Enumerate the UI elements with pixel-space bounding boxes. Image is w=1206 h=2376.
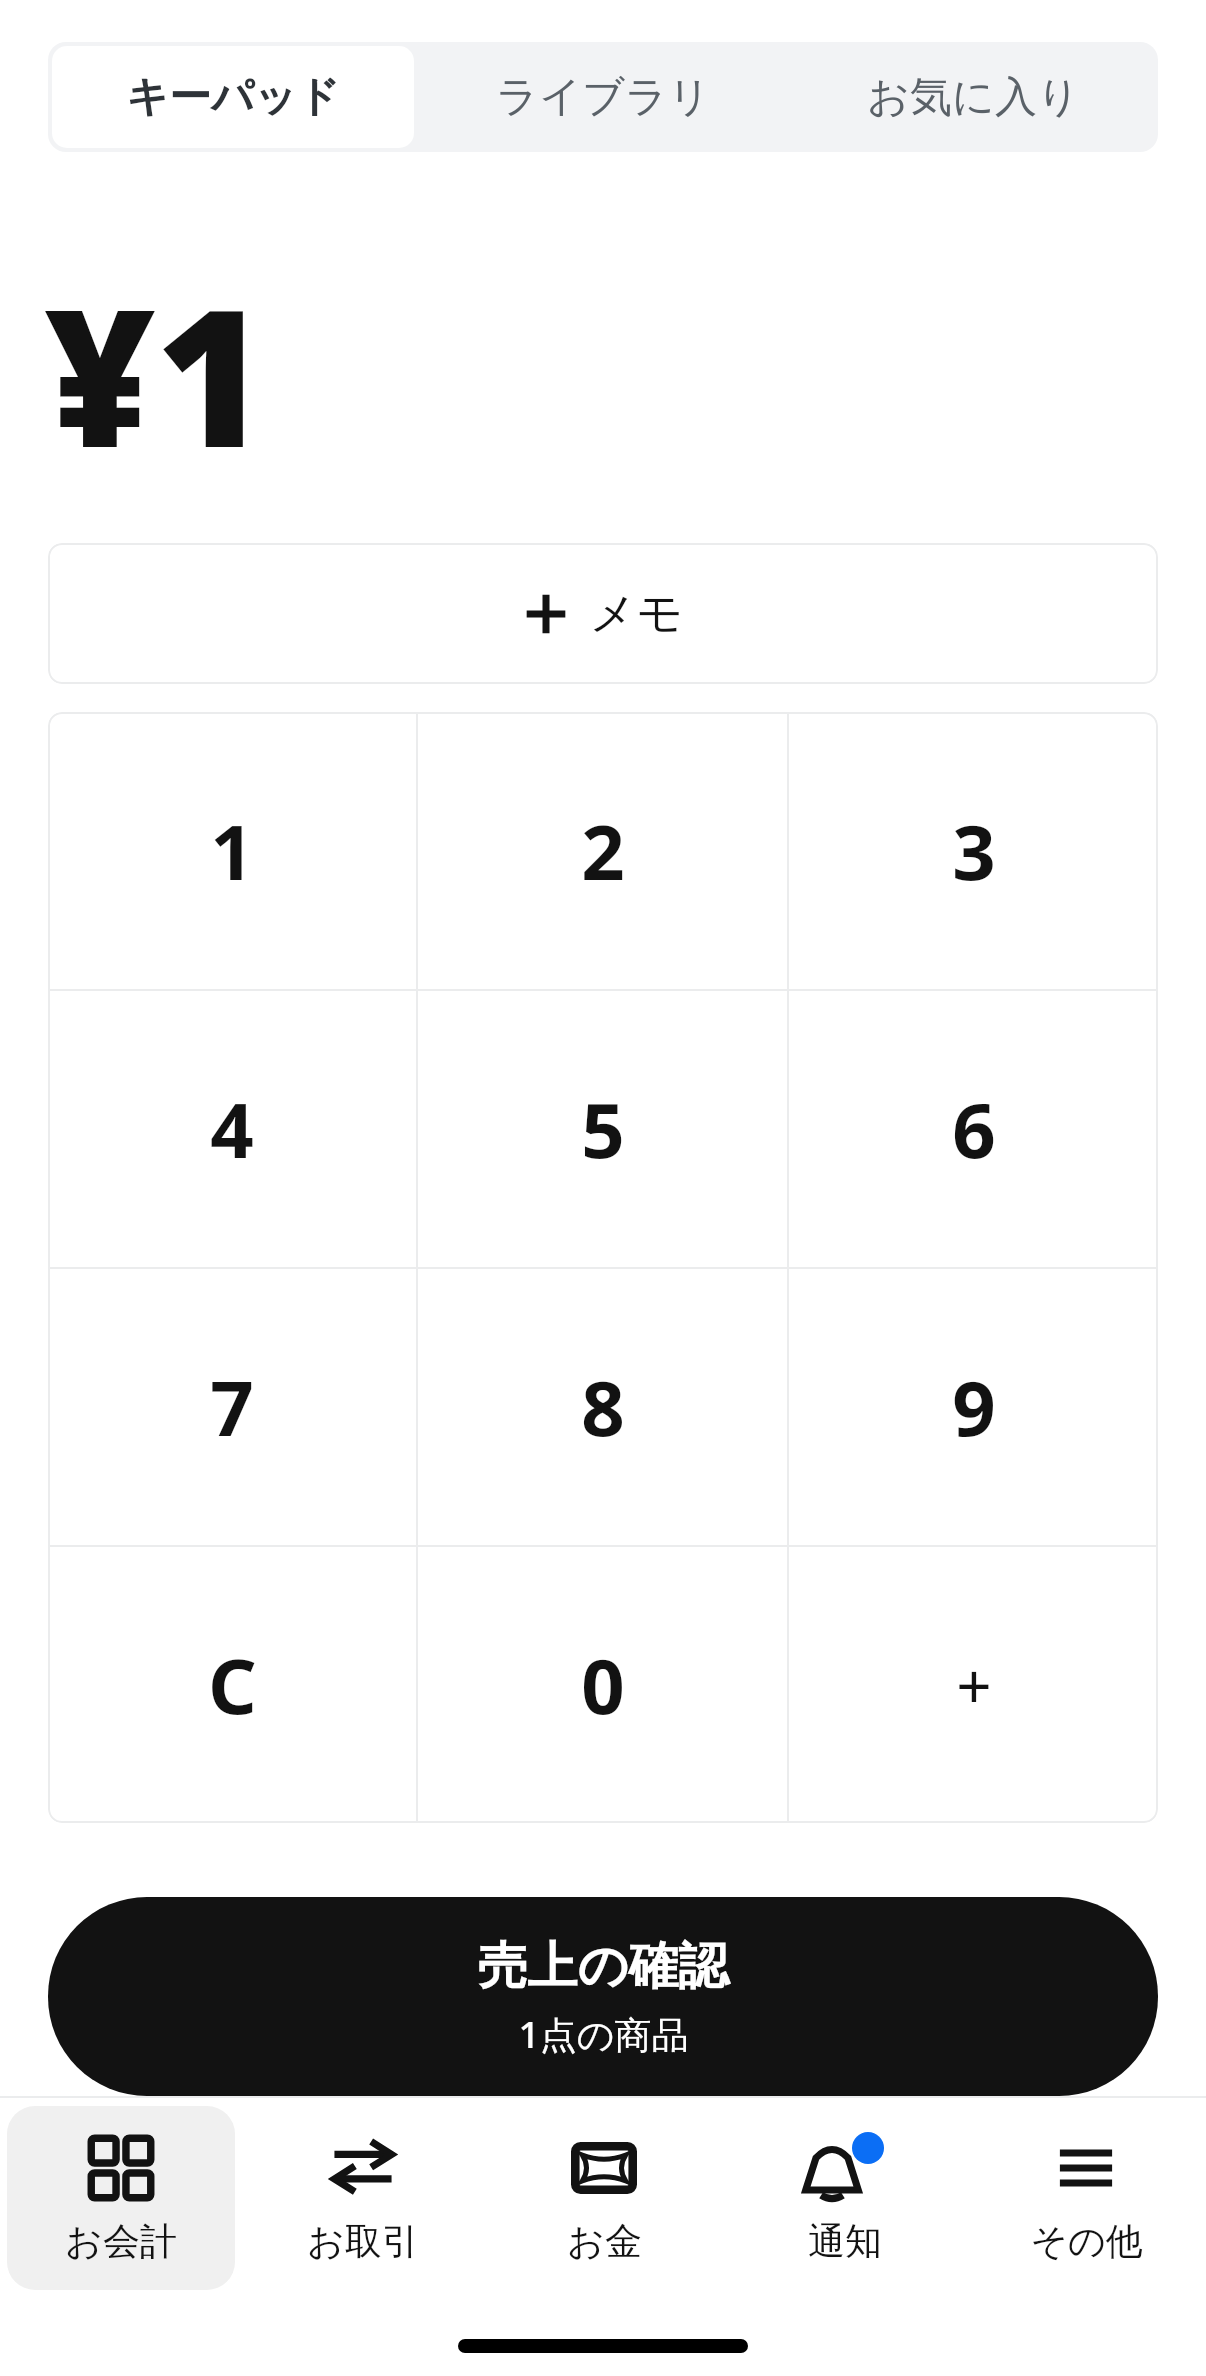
button[interactable]: + bbox=[789, 1547, 1158, 1823]
button[interactable]: ライブラリ bbox=[422, 46, 784, 148]
button[interactable]: 2 bbox=[418, 712, 787, 989]
staticText: メモ bbox=[589, 585, 684, 643]
staticText: 通知 bbox=[808, 2218, 882, 2265]
button[interactable]: お金 bbox=[490, 2106, 718, 2290]
staticText: C bbox=[208, 1633, 257, 1737]
button[interactable]: 6 bbox=[789, 991, 1158, 1267]
button[interactable]: C bbox=[48, 1547, 416, 1823]
button[interactable]: 3 bbox=[789, 712, 1158, 989]
staticText: お金 bbox=[567, 2218, 642, 2265]
staticText: 5 bbox=[581, 1077, 625, 1181]
other: お会計 bbox=[90, 2137, 152, 2199]
button[interactable]: 通知 bbox=[731, 2106, 959, 2290]
button[interactable]: 1 bbox=[48, 712, 416, 989]
button[interactable]: お会計 bbox=[7, 2106, 235, 2290]
staticText: + bbox=[956, 1643, 992, 1727]
staticText: 1点の商品 bbox=[518, 2008, 689, 2059]
staticText: その他 bbox=[1030, 2218, 1143, 2265]
staticText: 8 bbox=[581, 1355, 625, 1459]
other: 通知 bbox=[800, 2132, 890, 2204]
button[interactable]: 7 bbox=[48, 1269, 416, 1545]
staticText: お会計 bbox=[65, 2218, 177, 2265]
button[interactable]: キーパッド bbox=[52, 46, 414, 148]
staticText: 1 bbox=[210, 799, 254, 903]
staticText: キーパッド bbox=[126, 71, 340, 124]
other: お金 bbox=[571, 2135, 637, 2201]
button[interactable]: お気に入り bbox=[792, 46, 1154, 148]
other: お取引 bbox=[329, 2134, 397, 2202]
staticText: 3 bbox=[952, 799, 996, 903]
button[interactable]: その他 bbox=[972, 2106, 1200, 2290]
button[interactable]: 4 bbox=[48, 991, 416, 1267]
staticText: 売上の確認 bbox=[477, 1935, 729, 1998]
staticText: 2 bbox=[581, 799, 625, 903]
button[interactable]: 8 bbox=[418, 1269, 787, 1545]
staticText: お取引 bbox=[307, 2218, 419, 2265]
staticText: 4 bbox=[210, 1077, 254, 1181]
button[interactable]: 売上の確認 bbox=[48, 1897, 1158, 2096]
staticText: 9 bbox=[952, 1355, 996, 1459]
staticText: お気に入り bbox=[867, 71, 1080, 124]
button[interactable]: 5 bbox=[418, 991, 787, 1267]
staticText: 7 bbox=[210, 1355, 254, 1459]
staticText: ¥1 bbox=[44, 244, 267, 503]
staticText: 0 bbox=[581, 1633, 625, 1737]
button[interactable]: 9 bbox=[789, 1269, 1158, 1545]
button[interactable]: 0 bbox=[418, 1547, 787, 1823]
button[interactable]: メモ bbox=[48, 543, 1158, 684]
staticText: 6 bbox=[952, 1077, 996, 1181]
staticText: ライブラリ bbox=[496, 71, 711, 124]
other: その他 bbox=[1057, 2139, 1115, 2197]
button[interactable]: お取引 bbox=[249, 2106, 477, 2290]
